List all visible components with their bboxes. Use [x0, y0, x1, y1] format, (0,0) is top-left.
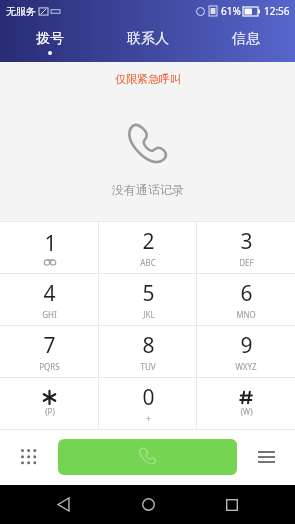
staticText: +: [146, 413, 151, 424]
button[interactable]: Home: [126, 485, 170, 524]
staticText: (W): [240, 406, 253, 417]
staticText: 1: [44, 229, 57, 258]
staticText: 拨号: [36, 30, 64, 48]
staticText: ABC: [140, 257, 156, 268]
staticText: 61%: [221, 4, 241, 18]
staticText: WXYZ: [235, 361, 257, 372]
button[interactable]: 7: [0, 326, 99, 377]
staticText: JKL: [143, 309, 155, 320]
button[interactable]: Menu: [243, 434, 289, 480]
staticText: PQRS: [39, 361, 60, 372]
staticText: 4: [43, 279, 56, 308]
staticText: 12:56: [264, 4, 290, 18]
button[interactable]: 2: [99, 222, 197, 273]
button[interactable]: Call: [58, 439, 237, 475]
staticText: 8: [142, 331, 155, 360]
staticText: GHI: [42, 309, 57, 320]
staticText: 3: [240, 227, 253, 256]
button[interactable]: 9: [197, 326, 295, 377]
staticText: DEF: [239, 257, 254, 268]
button[interactable]: 0: [99, 378, 197, 429]
button[interactable]: 3: [197, 222, 295, 273]
button[interactable]: 4: [0, 274, 99, 325]
staticText: 0: [142, 383, 155, 412]
staticText: 7: [43, 331, 56, 360]
staticText: 无服务: [6, 5, 36, 18]
staticText: 5: [142, 279, 155, 308]
button[interactable]: Recents: [210, 485, 254, 524]
button[interactable]: 信息: [197, 22, 295, 62]
staticText: 仅限紧急呼叫: [115, 72, 181, 86]
staticText: MNO: [236, 309, 256, 320]
staticText: (P): [45, 406, 55, 417]
button[interactable]: 5: [99, 274, 197, 325]
staticText: 6: [240, 279, 253, 308]
button[interactable]: (W): [197, 378, 295, 429]
staticText: 信息: [232, 30, 260, 48]
staticText: 联系人: [127, 30, 169, 48]
staticText: 9: [240, 331, 253, 360]
staticText: 2: [142, 227, 155, 256]
staticText: TUV: [140, 361, 156, 372]
button[interactable]: 拨号: [0, 22, 99, 62]
button[interactable]: Back: [41, 485, 85, 524]
button[interactable]: 联系人: [99, 22, 197, 62]
button[interactable]: 1: [0, 222, 99, 273]
button[interactable]: Keypad: [6, 434, 52, 480]
button[interactable]: 6: [197, 274, 295, 325]
staticText: 没有通话记录: [112, 182, 184, 197]
button[interactable]: 8: [99, 326, 197, 377]
button[interactable]: (P): [0, 378, 99, 429]
